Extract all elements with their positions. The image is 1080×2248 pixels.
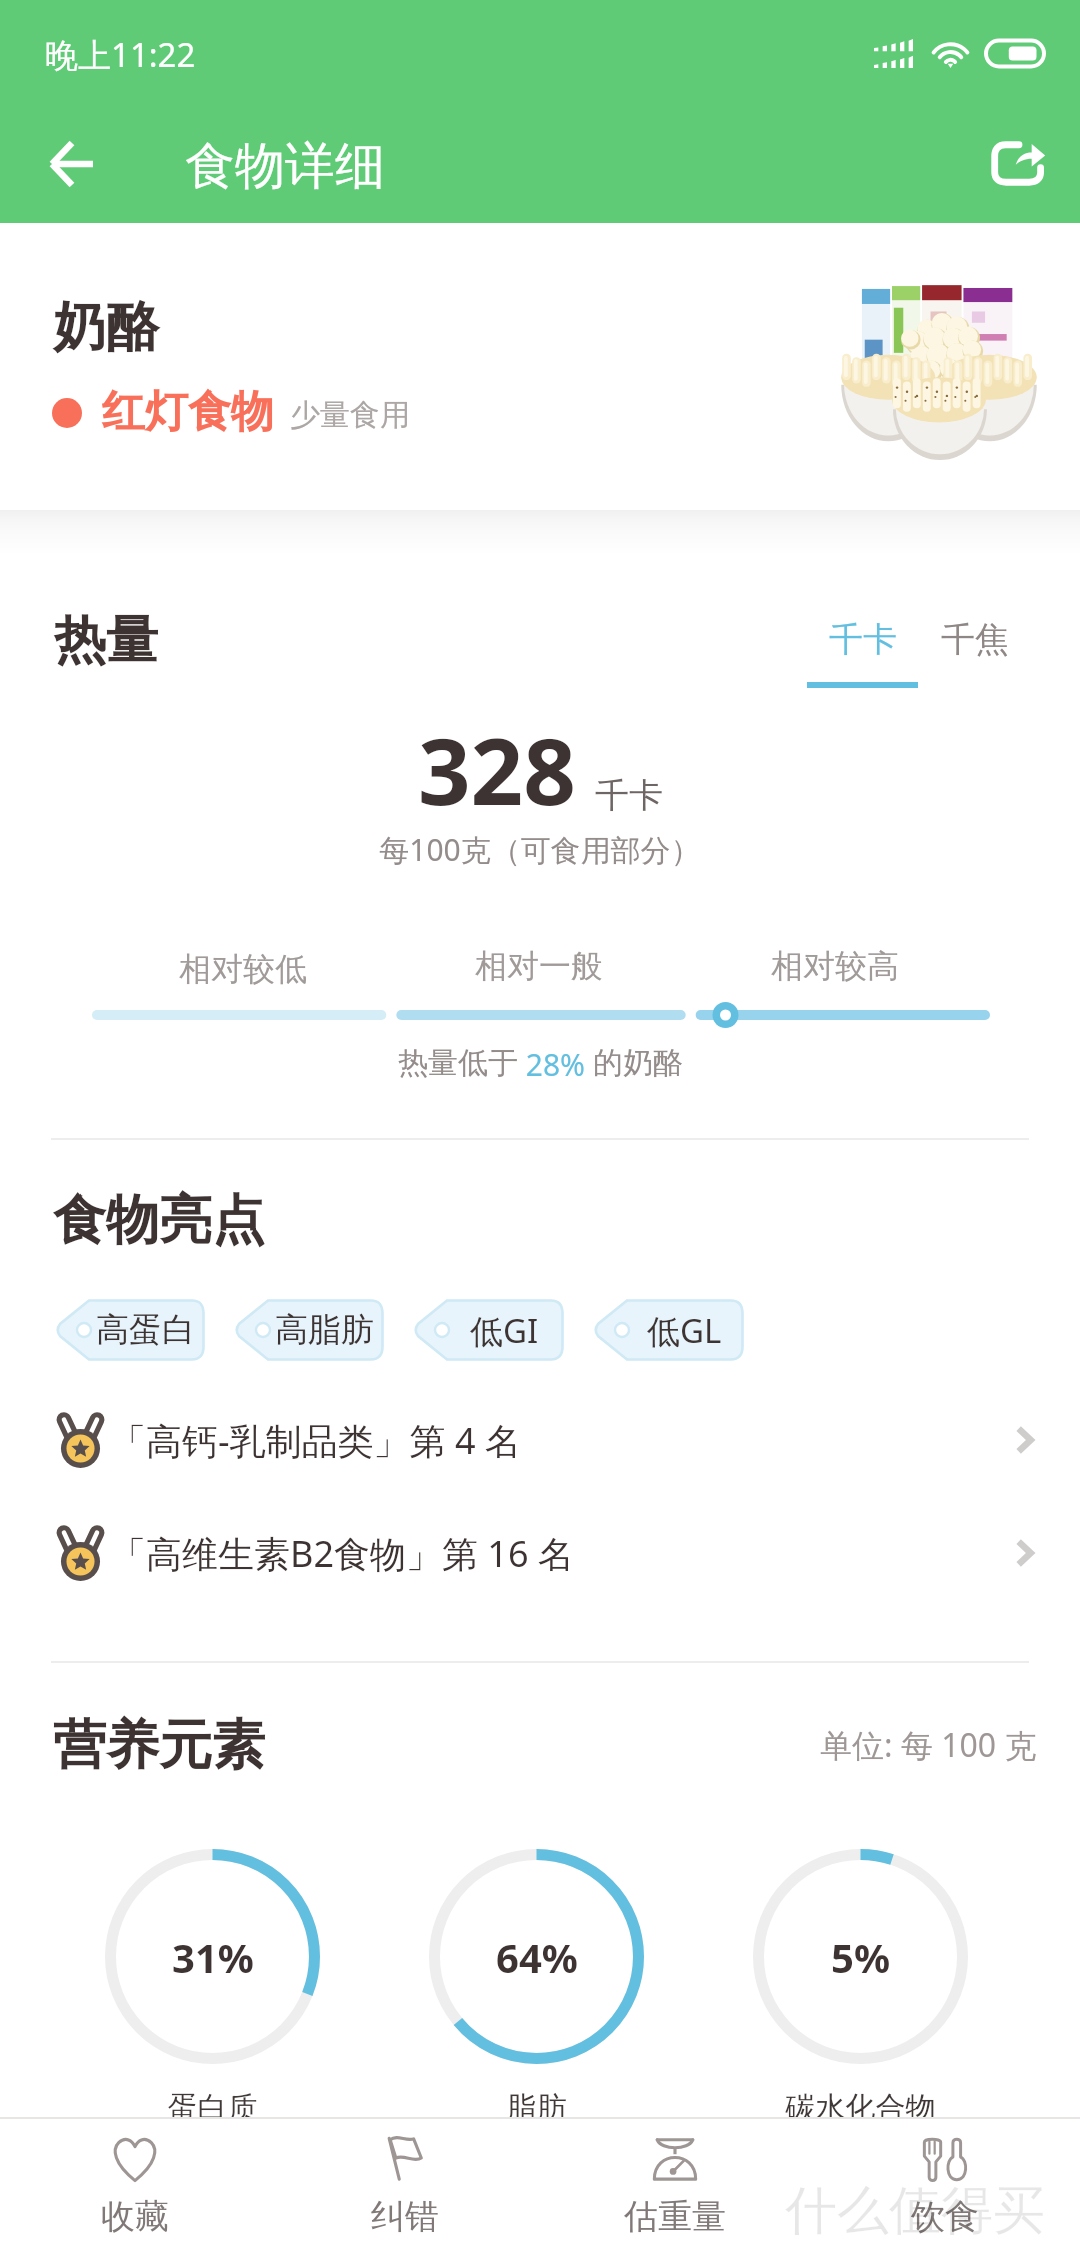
staticText: 碳水化合物 xyxy=(753,2089,968,2127)
button[interactable]: 千焦 xyxy=(909,608,1041,692)
staticText: 相对一般 xyxy=(475,946,603,986)
staticText: 每100克（可食用部分） xyxy=(0,829,1080,870)
staticText: 营养元素 xyxy=(53,1712,265,1779)
staticText: 高蛋白 xyxy=(96,1309,195,1351)
staticText: 千卡 xyxy=(829,618,897,661)
button[interactable]: 饮食 xyxy=(810,2119,1080,2248)
staticText: 热量 xyxy=(54,608,158,674)
staticText: 低GL xyxy=(647,1308,722,1353)
button[interactable]: Back xyxy=(20,112,124,216)
staticText: 千卡 xyxy=(595,774,663,817)
staticText: 什么值得买 xyxy=(785,2178,1045,2244)
staticText: 相对较低 xyxy=(179,949,307,989)
staticText: 食物详细 xyxy=(185,135,385,198)
staticText: 收藏 xyxy=(101,2195,169,2238)
staticText: 奶酪 xyxy=(53,294,159,361)
staticText: 相对较高 xyxy=(771,946,899,986)
staticText: 饮食 xyxy=(911,2195,979,2238)
staticText: 64% xyxy=(496,1930,578,1984)
button[interactable]: Share xyxy=(967,110,1071,214)
staticText: 5% xyxy=(831,1930,890,1984)
staticText: 328 xyxy=(418,707,576,832)
staticText: 的奶酪 xyxy=(593,1044,683,1082)
staticText: 蛋白质 xyxy=(105,2089,320,2127)
staticText: 热量低于 xyxy=(398,1044,518,1082)
staticText: 「高维生素B2食物」第 16 名 xyxy=(110,1529,574,1578)
button[interactable]: 「高钙-乳制品类」第 4 名 xyxy=(0,1388,1080,1492)
staticText: 千焦 xyxy=(941,618,1009,661)
button[interactable]: 低GL xyxy=(592,1299,744,1361)
button[interactable]: Food photo xyxy=(845,272,1033,460)
staticText: 31% xyxy=(172,1930,254,1984)
staticText: 估重量 xyxy=(624,2195,726,2238)
button[interactable]: 高脂肪 xyxy=(233,1299,384,1361)
staticText: 纠错 xyxy=(371,2195,439,2238)
staticText: 单位: 每 100 克 xyxy=(820,1723,1037,1767)
button[interactable]: 收藏 xyxy=(0,2119,270,2248)
button[interactable]: 「高维生素B2食物」第 16 名 xyxy=(0,1501,1080,1605)
staticText: 「高钙-乳制品类」第 4 名 xyxy=(110,1416,521,1465)
staticText: 低GI xyxy=(470,1308,539,1353)
button[interactable]: 纠错 xyxy=(270,2119,540,2248)
staticText: 28% xyxy=(518,1044,593,1085)
button[interactable]: 千卡 xyxy=(797,608,929,692)
staticText: 高脂肪 xyxy=(275,1309,374,1351)
button[interactable]: 高蛋白 xyxy=(54,1299,205,1361)
button[interactable]: 低GI xyxy=(412,1299,564,1361)
staticText: 少量食用 xyxy=(290,396,410,434)
button[interactable]: 估重量 xyxy=(540,2119,810,2248)
staticText: 红灯食物 xyxy=(102,385,274,439)
staticText: 晚上11:22 xyxy=(45,32,196,77)
staticText: 脂肪 xyxy=(429,2089,644,2127)
staticText: 食物亮点 xyxy=(53,1187,265,1254)
